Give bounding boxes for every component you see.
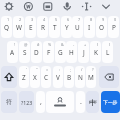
- staticText: Q: [4, 23, 9, 32]
- staticText: D: [34, 48, 39, 57]
- button[interactable]: 下一步: [101, 91, 120, 113]
- button[interactable]: W: [13, 16, 24, 38]
- button[interactable]: ?123: [19, 91, 34, 113]
- staticText: -: [73, 42, 75, 47]
- button[interactable]: 中: [86, 91, 99, 113]
- staticText: 7: [78, 17, 81, 22]
- staticText: S: [23, 48, 27, 57]
- staticText: 英: [94, 100, 98, 104]
- button[interactable]: L: [102, 41, 113, 63]
- staticText: ': [26, 67, 27, 72]
- button[interactable]: 符: [1, 91, 17, 113]
- staticText: K: [94, 48, 98, 57]
- button[interactable]: Z: [19, 66, 29, 88]
- staticText: I: [88, 23, 91, 32]
- staticText: 下一步: [103, 99, 118, 105]
- staticText: G: [58, 48, 63, 57]
- button[interactable]: [21, 0, 35, 14]
- button[interactable]: [46, 91, 74, 113]
- button[interactable]: I: [84, 16, 95, 38]
- button[interactable]: K: [90, 41, 101, 63]
- staticText: Y: [65, 23, 69, 32]
- staticText: =: [46, 67, 49, 72]
- button[interactable]: G: [55, 41, 66, 63]
- staticText: T: [53, 23, 57, 32]
- button[interactable]: F: [43, 41, 54, 63]
- staticText: /: [81, 67, 83, 72]
- button[interactable]: [2, 0, 16, 14]
- staticText: (: [97, 42, 99, 47]
- button[interactable]: Y: [61, 16, 72, 38]
- staticText: ": [36, 67, 38, 72]
- staticText: 0: [114, 17, 117, 22]
- button[interactable]: M: [86, 66, 96, 88]
- staticText: C: [44, 73, 49, 82]
- staticText: O: [99, 23, 104, 32]
- staticText: 中: [89, 98, 96, 107]
- button[interactable]: E: [25, 16, 36, 38]
- staticText: 5: [55, 17, 58, 22]
- button[interactable]: P: [108, 16, 119, 38]
- button[interactable]: ,: [36, 91, 45, 113]
- staticText: +: [84, 42, 87, 47]
- button[interactable]: [60, 0, 74, 14]
- staticText: ): [109, 42, 111, 47]
- button[interactable]: Q: [1, 16, 12, 38]
- staticText: V: [56, 73, 60, 82]
- button[interactable]: R: [37, 16, 48, 38]
- staticText: R: [41, 23, 45, 32]
- staticText: 1: [7, 17, 10, 22]
- staticText: 符: [6, 98, 12, 106]
- staticText: H: [69, 48, 74, 57]
- button[interactable]: U: [72, 16, 83, 38]
- staticText: &: [61, 42, 64, 47]
- button[interactable]: N: [75, 66, 85, 88]
- staticText: .: [80, 97, 82, 107]
- staticText: ?: [92, 67, 94, 72]
- button[interactable]: O: [96, 16, 107, 38]
- staticText: 6: [67, 17, 70, 22]
- staticText: 8: [90, 17, 93, 22]
- button[interactable]: T: [49, 16, 60, 38]
- button[interactable]: B: [64, 66, 74, 88]
- button[interactable]: S: [19, 41, 30, 63]
- staticText: 9: [102, 17, 105, 22]
- staticText: N: [78, 73, 83, 82]
- staticText: #: [37, 42, 40, 47]
- staticText: F: [47, 48, 51, 57]
- button[interactable]: J: [78, 41, 89, 63]
- button[interactable]: X: [30, 66, 40, 88]
- staticText: W: [16, 23, 22, 32]
- button[interactable]: .: [76, 91, 85, 113]
- button[interactable]: [41, 0, 55, 14]
- button[interactable]: [99, 66, 119, 88]
- staticText: P: [112, 23, 116, 32]
- staticText: E: [29, 23, 33, 32]
- staticText: A: [10, 48, 15, 57]
- button[interactable]: V: [53, 66, 63, 88]
- staticText: L: [106, 48, 110, 57]
- button[interactable]: [80, 0, 94, 14]
- button[interactable]: [99, 0, 113, 14]
- button[interactable]: H: [66, 41, 77, 63]
- staticText: U: [75, 23, 80, 32]
- staticText: M: [88, 73, 94, 82]
- staticText: J: [83, 48, 85, 57]
- staticText: 4: [43, 17, 46, 22]
- staticText: X: [33, 73, 37, 82]
- staticText: ,: [40, 97, 42, 107]
- staticText: 2: [19, 17, 22, 22]
- staticText: B: [67, 73, 72, 82]
- button[interactable]: A: [7, 41, 18, 63]
- staticText: ?123: [21, 99, 33, 106]
- staticText: :: [59, 67, 61, 72]
- button[interactable]: D: [31, 41, 42, 63]
- button[interactable]: [1, 66, 17, 88]
- staticText: %: [48, 42, 52, 47]
- staticText: !: [14, 42, 16, 47]
- staticText: 3: [31, 17, 34, 22]
- staticText: Z: [22, 73, 26, 82]
- button[interactable]: C: [41, 66, 51, 88]
- staticText: @: [24, 42, 28, 47]
- staticText: ;: [70, 67, 72, 72]
